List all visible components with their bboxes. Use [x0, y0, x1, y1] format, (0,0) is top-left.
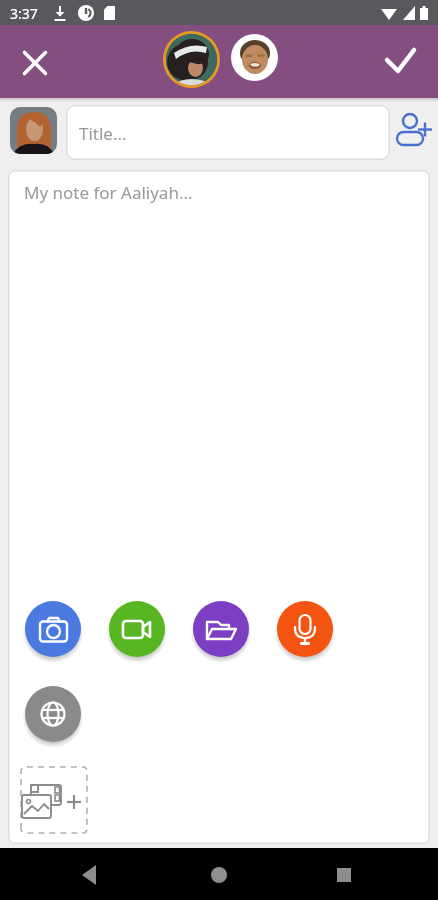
button[interactable] [163, 31, 220, 88]
button[interactable] [10, 107, 57, 154]
staticText: My note for Aaliyah… [24, 181, 193, 204]
button[interactable] [25, 686, 81, 742]
button[interactable] [195, 850, 243, 898]
button[interactable] [320, 850, 368, 898]
button[interactable] [67, 850, 115, 898]
button[interactable] [231, 34, 278, 81]
staticText: Title... [79, 122, 127, 145]
button[interactable] [109, 601, 165, 657]
button[interactable] [378, 40, 422, 84]
button[interactable] [277, 601, 333, 657]
button[interactable] [193, 601, 249, 657]
button[interactable] [13, 41, 57, 85]
button[interactable]: Title... [66, 105, 390, 160]
button[interactable] [25, 601, 81, 657]
staticText: 3:37 [10, 4, 38, 23]
button[interactable] [392, 108, 438, 156]
button[interactable] [20, 766, 88, 834]
